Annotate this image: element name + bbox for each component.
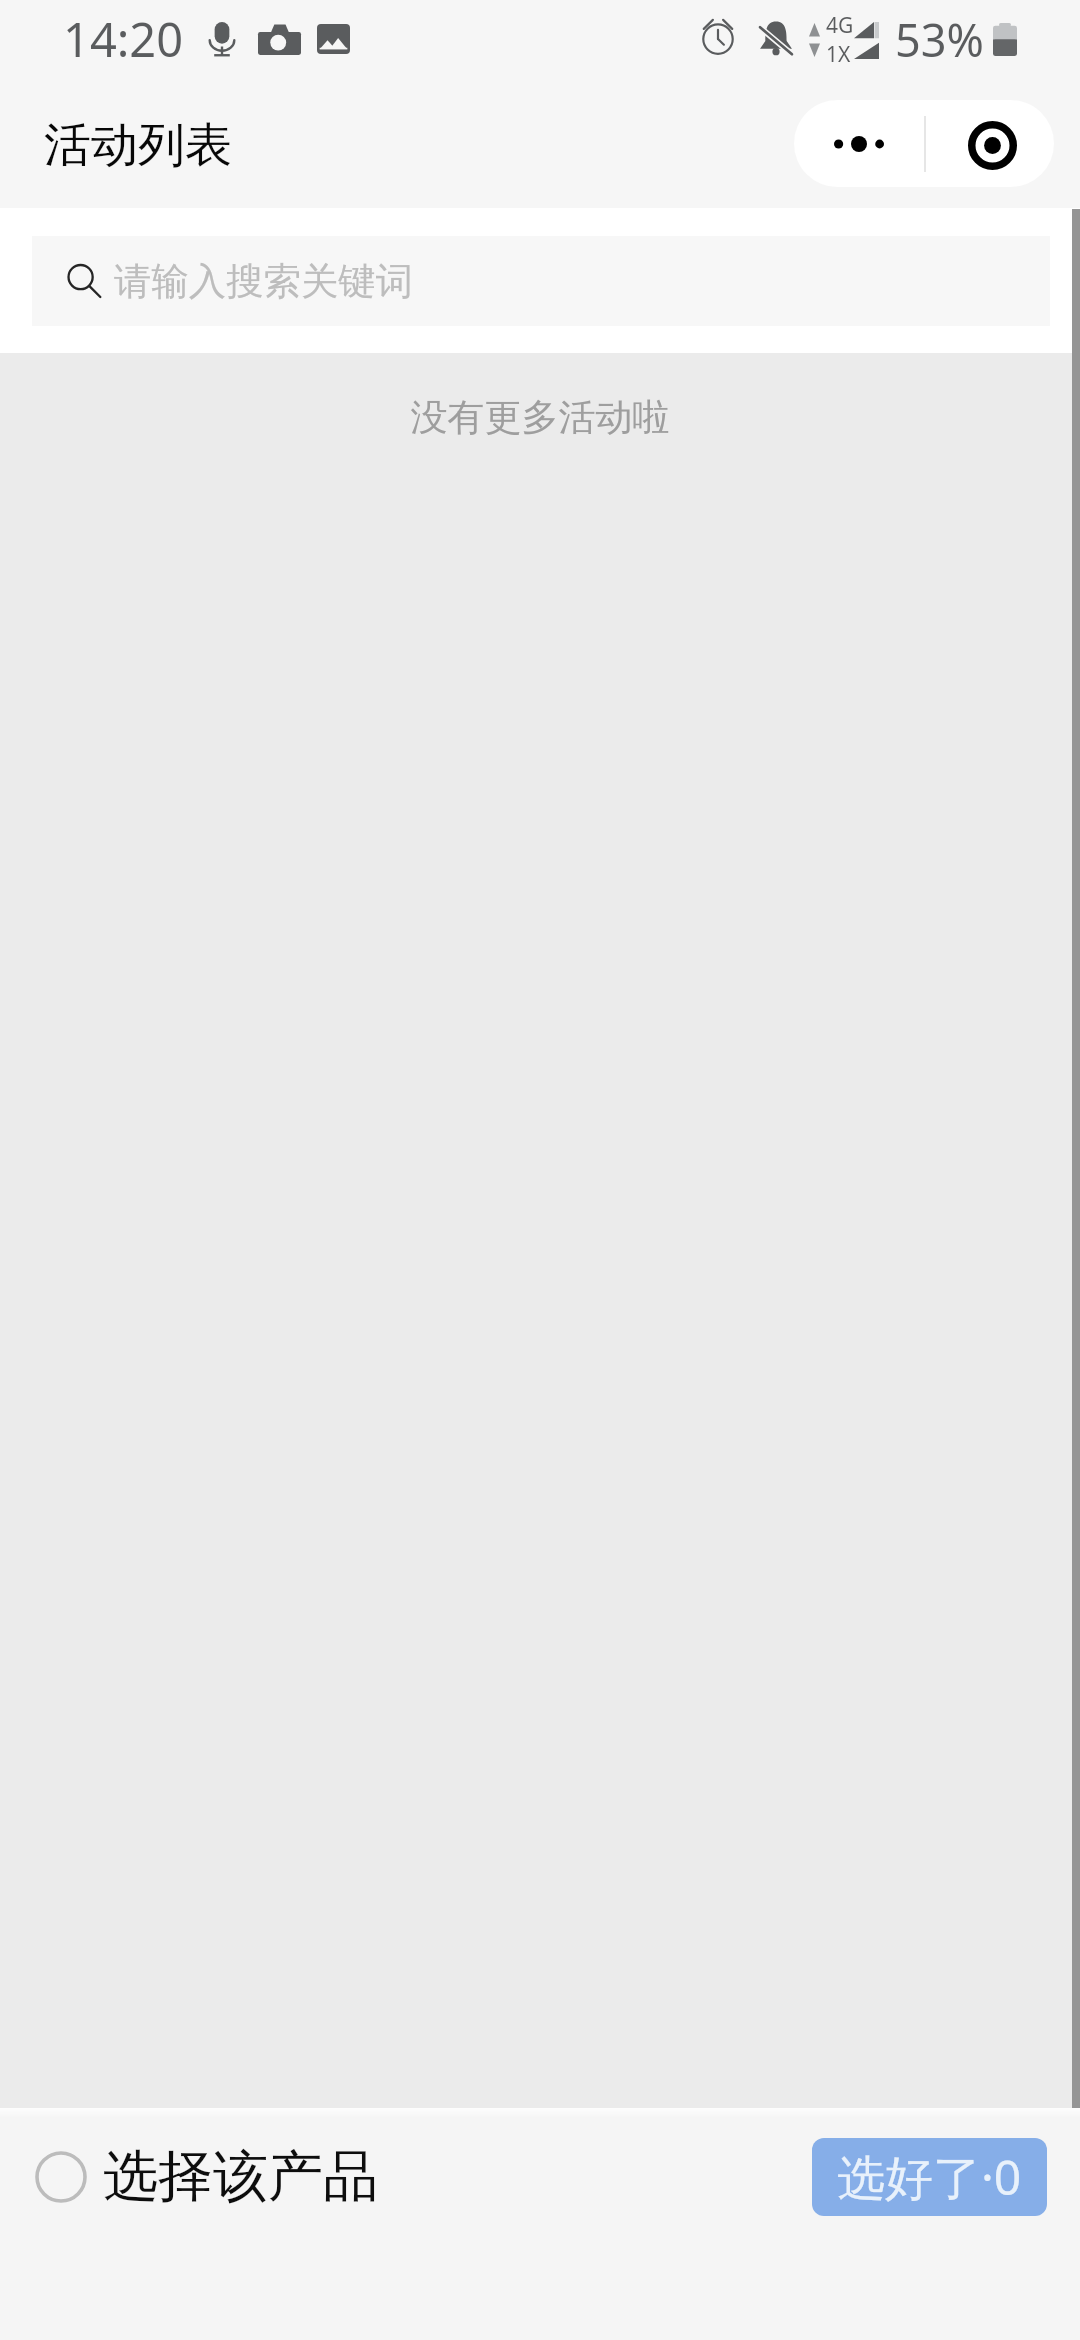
staticText: 选择该产品 <box>103 2142 378 2211</box>
staticText: 53% <box>895 9 984 70</box>
button[interactable]: 请输入搜索关键词 <box>32 236 1050 326</box>
staticText: 14:20 <box>63 7 184 71</box>
staticText: 选好了·0 <box>837 2144 1022 2210</box>
button[interactable]: Close mini program <box>929 102 1054 187</box>
button[interactable]: 选择该产品 <box>35 2142 378 2211</box>
staticText: 4G <box>826 11 854 40</box>
staticText: 活动列表 <box>44 116 232 175</box>
staticText: 没有更多活动啦 <box>0 394 1080 441</box>
button[interactable]: 选好了·0 <box>812 2138 1047 2216</box>
staticText: 请输入搜索关键词 <box>114 258 414 305</box>
staticText: 1X <box>826 40 851 69</box>
button[interactable]: More options <box>794 100 924 187</box>
